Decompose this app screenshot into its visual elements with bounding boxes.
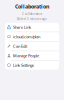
staticText: icloud.com/plan (13, 34, 40, 39)
staticText: Manage People (13, 53, 39, 58)
staticText: Edited 5 minutes ago (17, 17, 47, 21)
button[interactable]: Share Link (5, 23, 59, 32)
staticText: 2 collaborators (22, 12, 42, 16)
button[interactable]: Manage People (5, 51, 59, 60)
button[interactable]: icloud.com/plan (5, 32, 59, 41)
staticText: Share Link (13, 24, 31, 30)
staticText: Can Edit (13, 43, 27, 49)
staticText: Collaboration (15, 3, 49, 10)
button[interactable]: Can Edit (5, 42, 59, 51)
button[interactable]: Link Settings (5, 61, 59, 70)
staticText: Link Settings (13, 62, 34, 68)
